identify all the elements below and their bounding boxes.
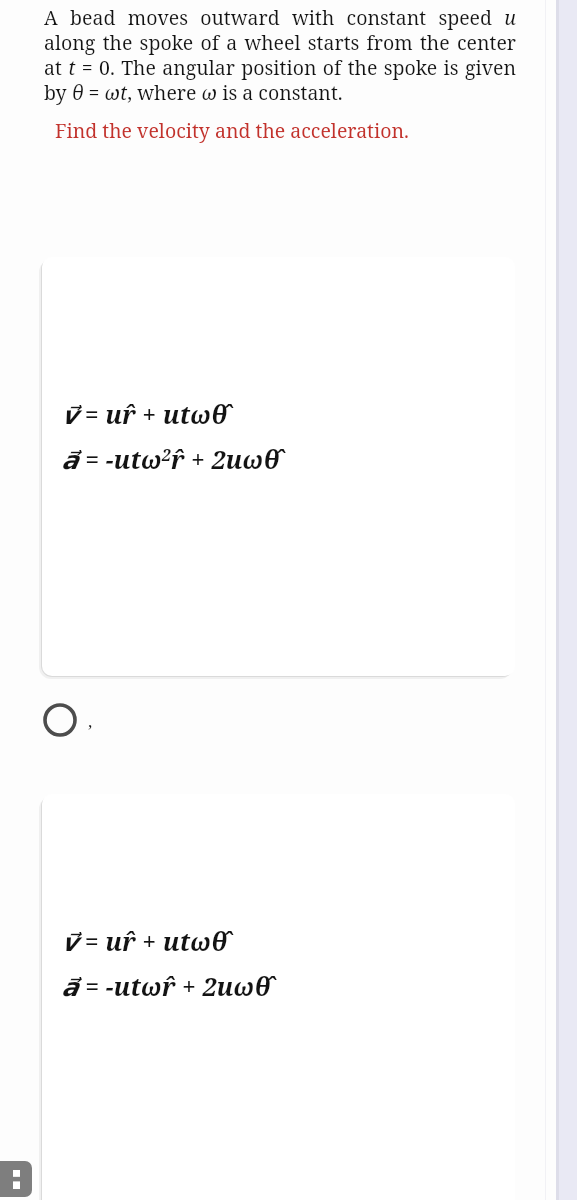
staticText: v⃗ = ur̂ + utωθ̂ bbox=[62, 924, 228, 958]
button[interactable]: More options bbox=[0, 1161, 32, 1197]
staticText: a⃗ = −utω2r̂ + 2uωθ̂ bbox=[62, 442, 280, 476]
staticText: a⃗ = −utωr̂ + 2uωθ̂ bbox=[62, 969, 271, 1003]
staticText: Find the velocity and the acceleration. bbox=[55, 117, 409, 144]
button[interactable]: v⃗ = ur̂ + utωθ̂ bbox=[42, 794, 515, 1200]
button[interactable]: v⃗ = ur̂ + utωθ̂ bbox=[42, 257, 515, 676]
button[interactable]: Select this answer bbox=[40, 693, 170, 747]
staticText: v⃗ = ur̂ + utωθ̂ bbox=[62, 397, 228, 431]
staticText: , bbox=[88, 709, 93, 732]
staticText: A bead moves outward with constant speed… bbox=[44, 4, 516, 106]
